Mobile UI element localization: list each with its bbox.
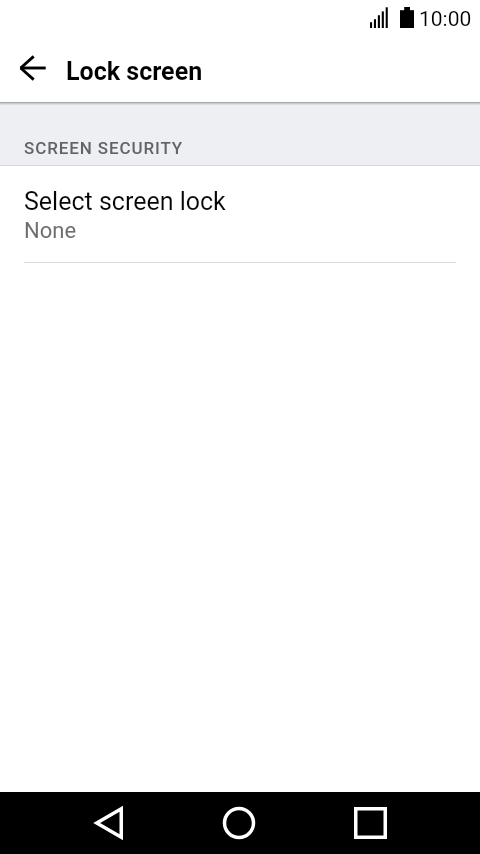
other: Battery full — [400, 7, 414, 28]
staticText: Select screen lock — [24, 187, 226, 216]
button[interactable]: Home — [209, 792, 269, 854]
button[interactable]: Select screen lock — [0, 166, 480, 262]
staticText: SCREEN SECURITY — [24, 138, 184, 158]
staticText: Lock screen — [66, 57, 203, 86]
button[interactable]: Navigate up — [9, 44, 57, 92]
other: Signal strength — [370, 7, 388, 28]
button[interactable]: Back — [79, 792, 139, 854]
button[interactable]: Recent apps — [340, 792, 400, 854]
staticText: 10:00 — [419, 7, 472, 32]
staticText: None — [24, 218, 77, 244]
